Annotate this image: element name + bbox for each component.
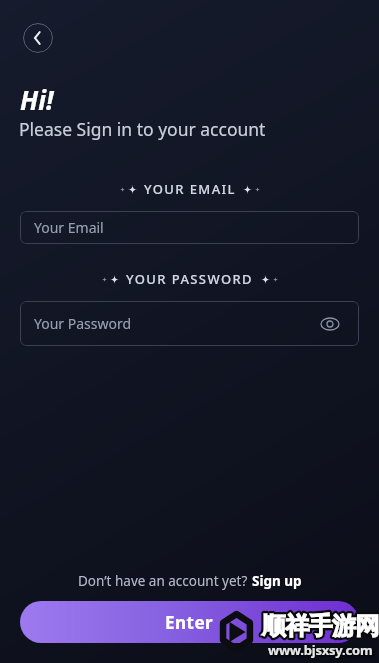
staticText: Your Password	[34, 314, 132, 333]
staticText: Your Email	[34, 218, 104, 237]
staticText: Please Sign in to your account	[19, 117, 266, 141]
staticText: YOUR PASSWORD	[126, 270, 254, 288]
staticText: Enter	[165, 611, 214, 634]
button[interactable]: Sign up	[252, 572, 302, 590]
staticText: www.bjsxsy.com	[268, 641, 373, 659]
staticText: Don’t have an account yet?	[78, 572, 248, 590]
staticText: Hi!	[20, 82, 54, 117]
staticText: 顺祥手游网	[262, 611, 379, 641]
staticText: YOUR EMAIL	[144, 180, 236, 198]
staticText: 顺祥手游网	[262, 611, 379, 641]
button[interactable]	[23, 23, 53, 53]
button[interactable]: Your Email	[20, 211, 359, 244]
button[interactable]: Enter	[20, 601, 359, 643]
button[interactable]: Your Password	[20, 301, 359, 346]
